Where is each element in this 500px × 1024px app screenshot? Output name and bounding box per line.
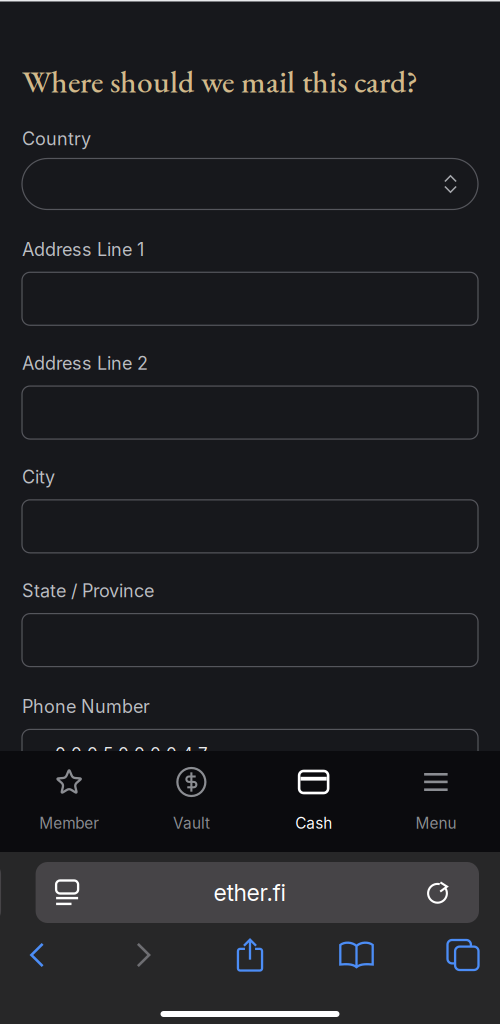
button[interactable]: Menu	[375, 751, 497, 852]
button[interactable]: Forward	[106, 933, 180, 977]
staticText: Where should we mail this card?	[22, 61, 418, 102]
staticText: Vault	[173, 814, 210, 833]
staticText: ether.fi	[214, 878, 286, 906]
button[interactable]: Share	[213, 933, 287, 977]
staticText: Country	[22, 128, 91, 149]
staticText: Menu	[415, 814, 456, 833]
staticText: 0 0 0 5 0 0 0 0 4 7	[55, 744, 208, 764]
button[interactable]: Page settings	[36, 862, 99, 923]
button[interactable]: Vault	[130, 751, 252, 852]
button[interactable]: Tabs	[426, 933, 500, 977]
staticText: City	[22, 466, 55, 488]
staticText: Address Line 1	[22, 238, 144, 260]
button[interactable]: Member	[8, 751, 130, 852]
staticText: Member	[39, 814, 99, 833]
staticText: Phone Number	[22, 696, 150, 717]
staticText: State / Province	[22, 580, 154, 602]
staticText: Address Line 2	[22, 352, 148, 374]
button[interactable]: Reload	[396, 862, 479, 923]
button[interactable]: Cash	[252, 751, 375, 852]
button[interactable]: Bookmarks	[319, 933, 393, 977]
staticText: Cash	[295, 814, 332, 833]
button[interactable]: Back	[0, 933, 74, 977]
